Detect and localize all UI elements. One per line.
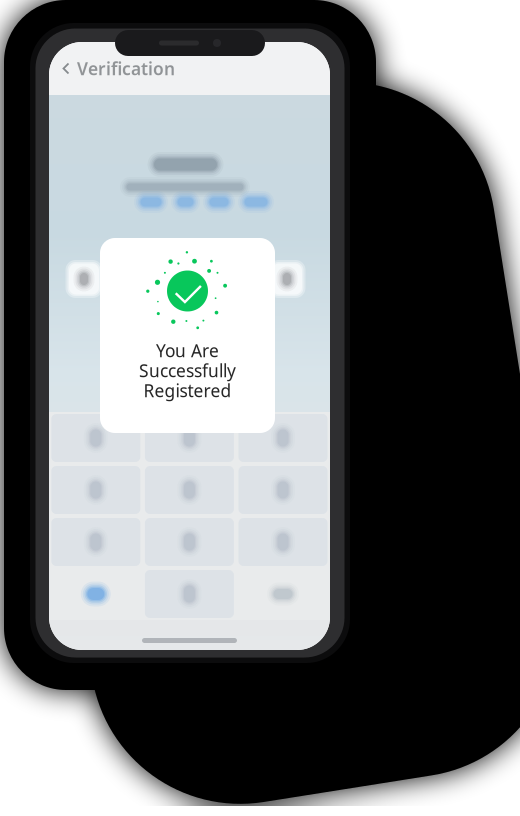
staticText: Verification <box>77 57 175 80</box>
staticText: Successfully <box>139 359 236 382</box>
staticText: Registered <box>143 379 231 402</box>
button[interactable]: Verification <box>49 57 175 80</box>
staticText: You Are <box>156 339 219 362</box>
